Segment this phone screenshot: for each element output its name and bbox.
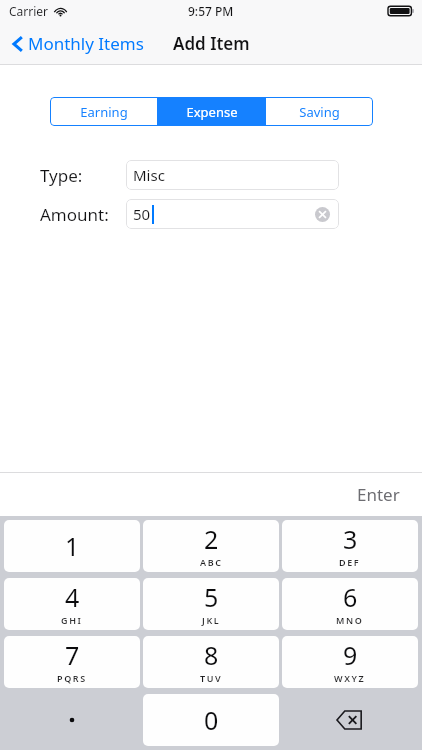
staticText: TUV bbox=[200, 672, 223, 684]
button[interactable]: Enter bbox=[353, 477, 404, 512]
staticText: Misc bbox=[133, 165, 165, 185]
staticText: 50 bbox=[133, 204, 151, 224]
button[interactable]: 1 bbox=[4, 520, 140, 572]
button[interactable]: 4 bbox=[4, 578, 140, 630]
staticText: 0 bbox=[204, 703, 219, 737]
staticText: 1 bbox=[65, 529, 80, 563]
staticText: 4 bbox=[65, 580, 80, 614]
button[interactable]: 50 bbox=[126, 199, 339, 229]
staticText: GHI bbox=[61, 614, 83, 626]
staticText: DEF bbox=[339, 556, 361, 568]
button[interactable]: Expense bbox=[158, 97, 265, 126]
button[interactable]: 0 bbox=[143, 694, 279, 746]
staticText: 5 bbox=[204, 580, 219, 614]
button[interactable]: Saving bbox=[266, 97, 373, 126]
staticText: Amount: bbox=[40, 203, 109, 226]
button[interactable]: Backspace bbox=[282, 694, 418, 746]
button[interactable]: Decimal point bbox=[4, 694, 140, 746]
staticText: Add Item bbox=[173, 32, 250, 55]
button[interactable]: 5 bbox=[143, 578, 279, 630]
button[interactable]: 7 bbox=[4, 636, 140, 688]
staticText: Enter bbox=[357, 483, 400, 506]
staticText: Earning bbox=[80, 103, 128, 121]
staticText: Carrier bbox=[9, 3, 49, 19]
staticText: JKL bbox=[202, 614, 221, 626]
button[interactable]: 2 bbox=[143, 520, 279, 572]
button[interactable]: 8 bbox=[143, 636, 279, 688]
staticText: 9 bbox=[343, 638, 358, 672]
staticText: 2 bbox=[204, 522, 219, 556]
staticText: 3 bbox=[343, 522, 358, 556]
staticText: WXYZ bbox=[334, 672, 366, 684]
staticText: 7 bbox=[65, 638, 80, 672]
staticText: ABC bbox=[200, 556, 223, 568]
staticText: Monthly Items bbox=[28, 32, 144, 55]
button[interactable]: Earning bbox=[50, 97, 157, 126]
staticText: Expense bbox=[186, 103, 238, 121]
staticText: PQRS bbox=[57, 672, 87, 684]
staticText: Type: bbox=[40, 164, 83, 187]
button[interactable]: 6 bbox=[282, 578, 418, 630]
staticText: MNO bbox=[336, 614, 364, 626]
staticText: 9:57 PM bbox=[188, 3, 234, 19]
button[interactable]: Clear text bbox=[312, 204, 332, 224]
button[interactable]: 9 bbox=[282, 636, 418, 688]
staticText: 6 bbox=[343, 580, 358, 614]
button[interactable]: Monthly Items bbox=[8, 28, 148, 59]
staticText: 8 bbox=[204, 638, 219, 672]
staticText: Saving bbox=[299, 103, 340, 121]
button[interactable]: 3 bbox=[282, 520, 418, 572]
button[interactable]: Misc bbox=[126, 160, 339, 190]
